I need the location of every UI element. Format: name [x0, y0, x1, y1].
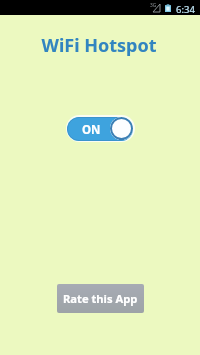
button[interactable]: WiFi hotspot switch, on [65, 114, 135, 143]
staticText: 6:34 [176, 3, 195, 16]
staticText: WiFi Hotspot [41, 33, 157, 57]
staticText: 3G [150, 2, 157, 9]
button[interactable]: Rate this App [57, 284, 144, 313]
staticText: ON [82, 122, 101, 138]
staticText: Rate this App [63, 291, 138, 306]
